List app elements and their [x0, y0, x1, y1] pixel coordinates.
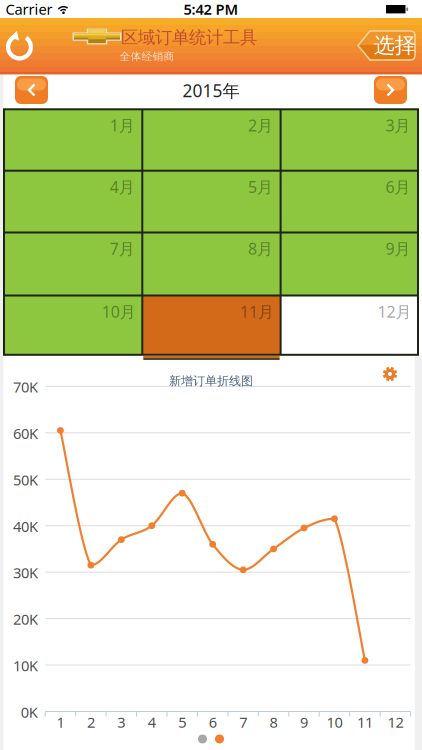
staticText: 12 [387, 712, 403, 732]
button[interactable]: 选择 [358, 30, 416, 61]
staticText: 30K [13, 563, 38, 582]
staticText: 10K [13, 656, 38, 675]
staticText: 50K [13, 470, 38, 489]
button[interactable]: 8月 [143, 233, 280, 294]
button[interactable]: Previous year [15, 76, 48, 104]
staticText: 70K [13, 377, 38, 397]
staticText: 2 [87, 712, 95, 732]
staticText: 4 [148, 712, 156, 732]
staticText: 1月 [110, 115, 135, 136]
staticText: 5:42 PM [183, 0, 238, 19]
staticText: 区域订单统计工具 [121, 27, 257, 48]
staticText: 5 [178, 712, 186, 732]
staticText: 10 [326, 712, 342, 732]
staticText: 1 [56, 712, 64, 732]
button[interactable]: 3月 [282, 110, 417, 170]
button[interactable]: 1月 [5, 110, 141, 170]
staticText: 8 [270, 712, 278, 732]
staticText: 8月 [248, 238, 273, 259]
staticText: 全体经销商 [119, 50, 174, 63]
staticText: 3月 [385, 115, 410, 136]
staticText: 9月 [385, 238, 410, 259]
staticText: 4月 [110, 176, 135, 197]
staticText: 9 [300, 712, 308, 732]
staticText: 新增订单折线图 [169, 374, 253, 388]
button[interactable]: 11月 [143, 296, 280, 354]
staticText: 7 [239, 712, 247, 732]
staticText: 40K [13, 516, 38, 536]
staticText: 20K [13, 609, 38, 629]
button[interactable]: 2月 [143, 110, 280, 170]
button[interactable]: Chart settings [381, 365, 399, 383]
button[interactable]: 12月 [282, 296, 417, 354]
staticText: 5月 [248, 176, 273, 197]
staticText: 2015年 [182, 79, 239, 102]
button[interactable]: Next year [374, 76, 407, 104]
staticText: 2月 [248, 115, 273, 136]
staticText: 7月 [110, 238, 135, 259]
button[interactable]: 5月 [143, 172, 280, 231]
staticText: 12月 [377, 301, 411, 322]
staticText: 60K [13, 424, 38, 443]
button[interactable]: 7月 [5, 233, 141, 294]
staticText: 10月 [102, 301, 136, 322]
staticText: 3 [117, 712, 125, 732]
staticText: 6 [209, 712, 217, 732]
staticText: 6月 [385, 176, 410, 197]
staticText: 选择 [373, 32, 415, 59]
button[interactable]: 9月 [282, 233, 417, 294]
staticText: Carrier [5, 0, 52, 19]
button[interactable]: 4月 [5, 172, 141, 231]
staticText: 11月 [240, 301, 274, 322]
button[interactable]: 10月 [5, 296, 141, 354]
staticText: 0K [21, 702, 38, 722]
staticText: 11 [357, 712, 373, 732]
button[interactable]: Refresh [2, 30, 36, 64]
button[interactable]: 6月 [282, 172, 417, 231]
